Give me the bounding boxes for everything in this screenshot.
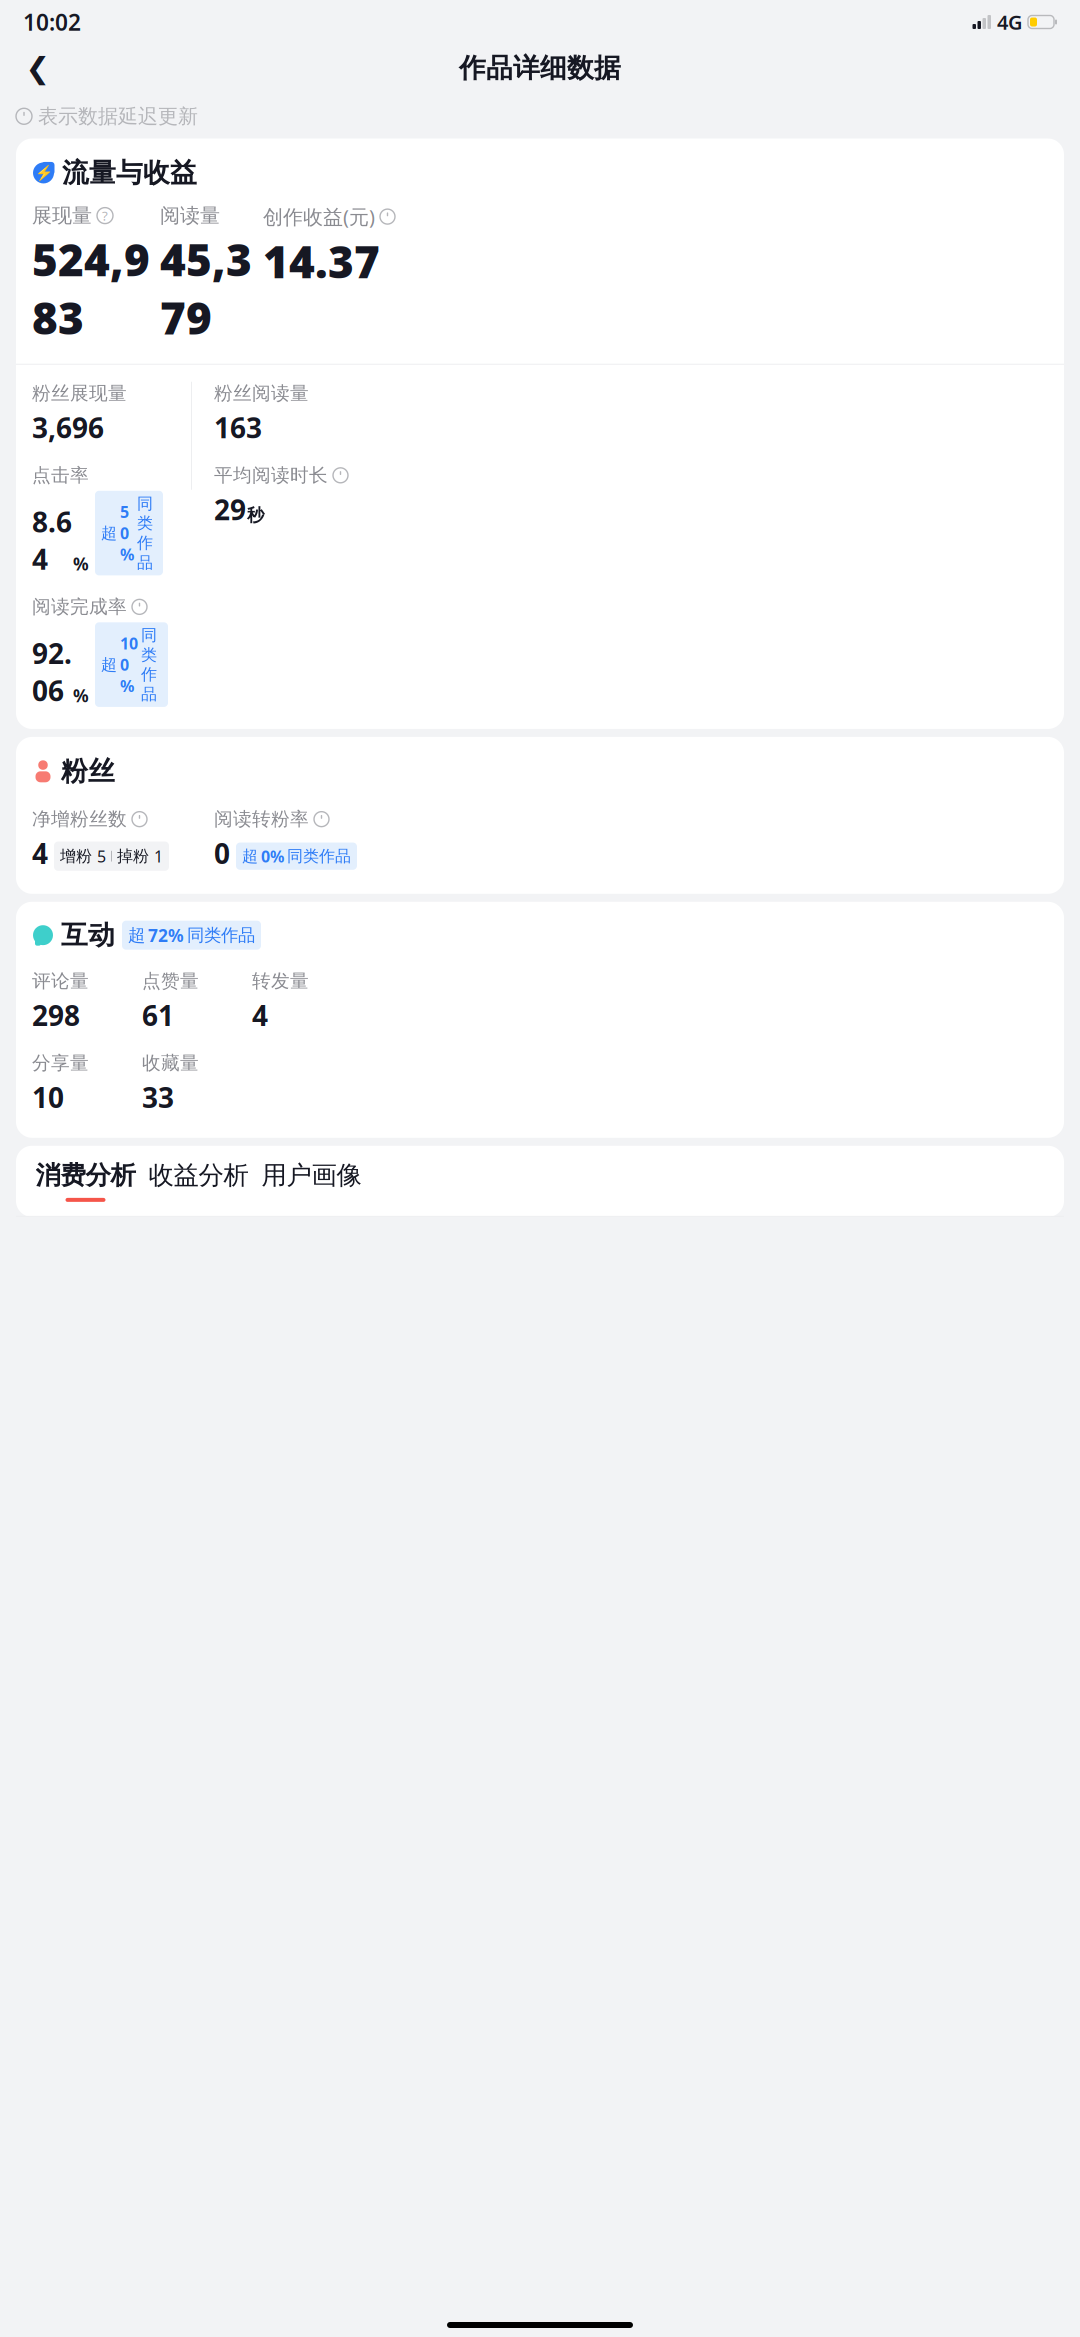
staticText: % — [73, 552, 89, 575]
staticText: 29 — [214, 491, 246, 528]
staticText: 4 — [32, 835, 48, 872]
staticText: % — [73, 684, 89, 707]
staticText: 超 — [242, 846, 258, 866]
staticText: 互动 — [61, 919, 115, 952]
staticText: 表示数据延迟更新 — [38, 104, 198, 129]
staticText: 收藏量 — [142, 1052, 199, 1075]
staticText: 同类作品 — [137, 494, 153, 572]
staticText: 掉粉 — [117, 846, 149, 866]
staticText: 点赞量 — [142, 970, 199, 992]
staticText: 8.64 — [32, 503, 72, 577]
staticText: 100% — [120, 633, 138, 696]
staticText: 超 — [101, 523, 117, 543]
staticText: 阅读转粉率 — [214, 808, 309, 831]
staticText: 评论量 — [32, 970, 89, 992]
staticText: 超 — [101, 655, 117, 674]
staticText: 5 — [97, 846, 106, 867]
staticText: 粉丝阅读量 — [214, 382, 309, 405]
button[interactable]: 消费分析 — [29, 1146, 142, 1216]
staticText: 61 — [142, 996, 174, 1034]
staticText: 92.06 — [32, 635, 72, 709]
staticText: 1 — [154, 846, 163, 867]
staticText: 同类作品 — [287, 846, 351, 866]
staticText: 收益分析 — [148, 1160, 248, 1191]
staticText: 524,983 — [32, 230, 150, 347]
staticText: ? — [102, 207, 108, 224]
staticText: 4G — [997, 9, 1023, 35]
staticText: 增粉 — [60, 846, 92, 866]
staticText: 163 — [214, 409, 262, 446]
staticText: 作品详细数据 — [459, 52, 621, 84]
staticText: 用户画像 — [261, 1160, 361, 1191]
staticText: 超 — [128, 924, 145, 946]
button[interactable]: 返回 — [16, 46, 60, 90]
staticText: 阅读完成率 — [32, 595, 127, 618]
staticText: 秒 — [247, 505, 264, 526]
staticText: 转发量 — [252, 970, 309, 992]
staticText: 3,696 — [32, 409, 104, 446]
staticText: 45,379 — [160, 230, 252, 347]
staticText: 净增粉丝数 — [32, 808, 127, 831]
staticText: 50% — [120, 501, 134, 565]
staticText: 分享量 — [32, 1052, 89, 1075]
staticText: 消费分析 — [35, 1160, 135, 1191]
staticText: 14.37 — [263, 232, 380, 290]
staticText: 0% — [261, 846, 284, 867]
staticText: 展现量 — [32, 203, 92, 228]
button[interactable]: 收益分析 — [142, 1146, 255, 1216]
staticText: 10 — [32, 1079, 64, 1116]
button[interactable]: 用户画像 — [255, 1146, 368, 1216]
staticText: 平均阅读时长 — [214, 464, 328, 487]
staticText: 33 — [142, 1079, 174, 1116]
staticText: 4 — [252, 996, 268, 1034]
staticText: 同类作品 — [141, 625, 157, 704]
staticText: 72% — [148, 924, 184, 947]
staticText: 创作收益(元) — [263, 203, 375, 230]
staticText: 10:02 — [23, 7, 81, 37]
staticText: 流量与收益 — [62, 157, 197, 189]
staticText: 同类作品 — [187, 924, 255, 946]
staticText: 粉丝展现量 — [32, 382, 127, 405]
staticText: 粉丝 — [61, 755, 115, 788]
staticText: 0 — [214, 835, 230, 872]
staticText: ❮ — [25, 51, 50, 85]
staticText: ⚡ — [34, 165, 52, 181]
staticText: 298 — [32, 996, 80, 1034]
staticText: 点击率 — [32, 464, 89, 487]
staticText: 阅读量 — [160, 203, 220, 228]
